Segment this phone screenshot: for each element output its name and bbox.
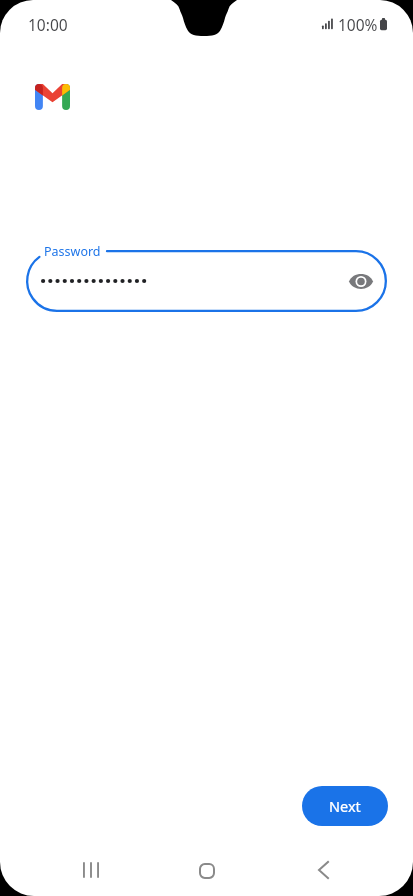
button[interactable]: Recent apps <box>67 846 115 894</box>
staticText: Next <box>329 796 361 816</box>
button[interactable]: Next <box>302 786 388 826</box>
button[interactable]: Show password <box>344 264 378 298</box>
staticText: Password <box>44 243 101 260</box>
button[interactable]: Home <box>183 847 231 895</box>
button[interactable]: Back <box>299 846 347 894</box>
staticText: 100% <box>338 14 378 35</box>
button[interactable]: Password <box>26 250 387 312</box>
staticText: 10:00 <box>28 14 68 35</box>
